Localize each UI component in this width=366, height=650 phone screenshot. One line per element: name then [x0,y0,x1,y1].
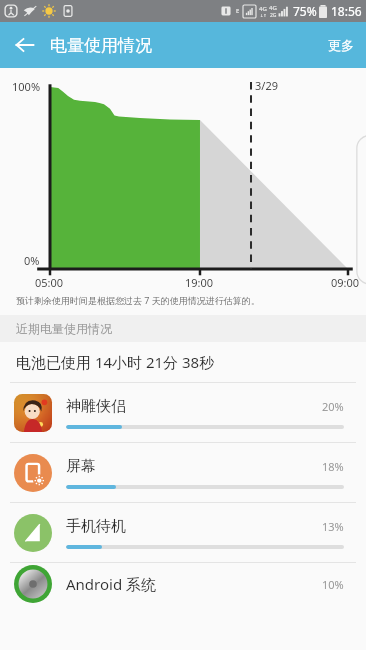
staticText: 2G [270,12,277,19]
staticText: 手机待机 [66,517,322,536]
staticText: 75% [293,3,317,19]
staticText: 09:00 [331,275,360,290]
staticText: 10% [322,577,344,592]
button[interactable]: 更多 [316,29,366,61]
staticText: 05:00 [35,275,64,290]
staticText: 4G [269,4,277,12]
staticText: 屏幕 [66,457,322,476]
staticText: 18:56 [331,3,362,19]
staticText: 0% [24,253,40,268]
button[interactable]: Back [8,28,42,62]
staticText: 3/29 [255,78,278,93]
staticText: 20% [322,399,344,414]
staticText: Android 系统 [66,574,322,594]
button[interactable]: 屏幕 [0,443,366,503]
staticText: 100% [12,79,41,94]
staticText: 4G [259,5,267,13]
button[interactable]: 手机待机 [0,503,366,563]
staticText: E [236,7,240,15]
button[interactable]: Android 系统 [0,563,366,605]
staticText: ↓↑ [260,13,267,18]
staticText: 神雕侠侣 [66,397,322,416]
staticText: 近期电量使用情况 [16,321,112,336]
staticText: 19:00 [185,275,214,290]
staticText: 13% [322,519,344,534]
staticText: 预计剩余使用时间是根据您过去 7 天的使用情况进行估算的。 [16,294,260,306]
button[interactable]: 神雕侠侣 [0,383,366,443]
staticText: 18% [322,459,344,474]
staticText: 更多 [328,37,354,53]
staticText: 电量使用情况 [50,35,152,56]
staticText: 电池已使用 14小时 21分 38秒 [16,352,215,372]
